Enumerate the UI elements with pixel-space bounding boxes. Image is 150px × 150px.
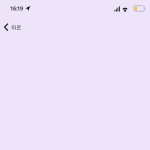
staticText: 16:19 bbox=[10, 5, 23, 12]
button[interactable]: Back bbox=[0, 17, 21, 33]
staticText: 뒤로 bbox=[11, 24, 21, 31]
